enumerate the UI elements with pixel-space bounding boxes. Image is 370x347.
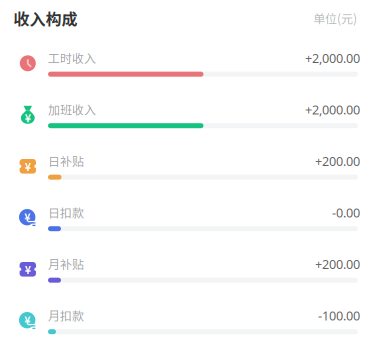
staticText: 工时收入 — [48, 49, 96, 67]
staticText: ¥ — [25, 110, 31, 125]
button[interactable]: ¥ — [0, 0, 370, 347]
staticText: 加班收入 — [48, 101, 96, 118]
staticText: 收入构成 — [13, 7, 77, 30]
staticText: 月补贴 — [48, 255, 84, 273]
staticText: +2,000.00 — [305, 101, 360, 118]
staticText: ¥ — [24, 209, 30, 224]
button[interactable]: ¥ — [0, 0, 370, 347]
button[interactable]: ¥ — [0, 0, 370, 347]
staticText: ¥ — [24, 312, 30, 327]
staticText: -0.00 — [332, 204, 360, 221]
staticText: ¥ — [25, 159, 31, 174]
button[interactable]: ¥ — [0, 0, 370, 347]
staticText: 日补贴 — [48, 152, 84, 170]
staticText: +200.00 — [315, 153, 360, 170]
button[interactable]: ¥ — [0, 0, 370, 347]
staticText: -100.00 — [318, 307, 360, 324]
staticText: +2,000.00 — [305, 50, 360, 67]
staticText: 日扣款 — [48, 204, 84, 221]
staticText: +200.00 — [315, 256, 360, 273]
staticText: ¥ — [25, 262, 31, 277]
staticText: 月扣款 — [48, 307, 84, 324]
button[interactable]: 工时收入 — [0, 0, 370, 347]
staticText: 单位(元) — [313, 9, 357, 27]
